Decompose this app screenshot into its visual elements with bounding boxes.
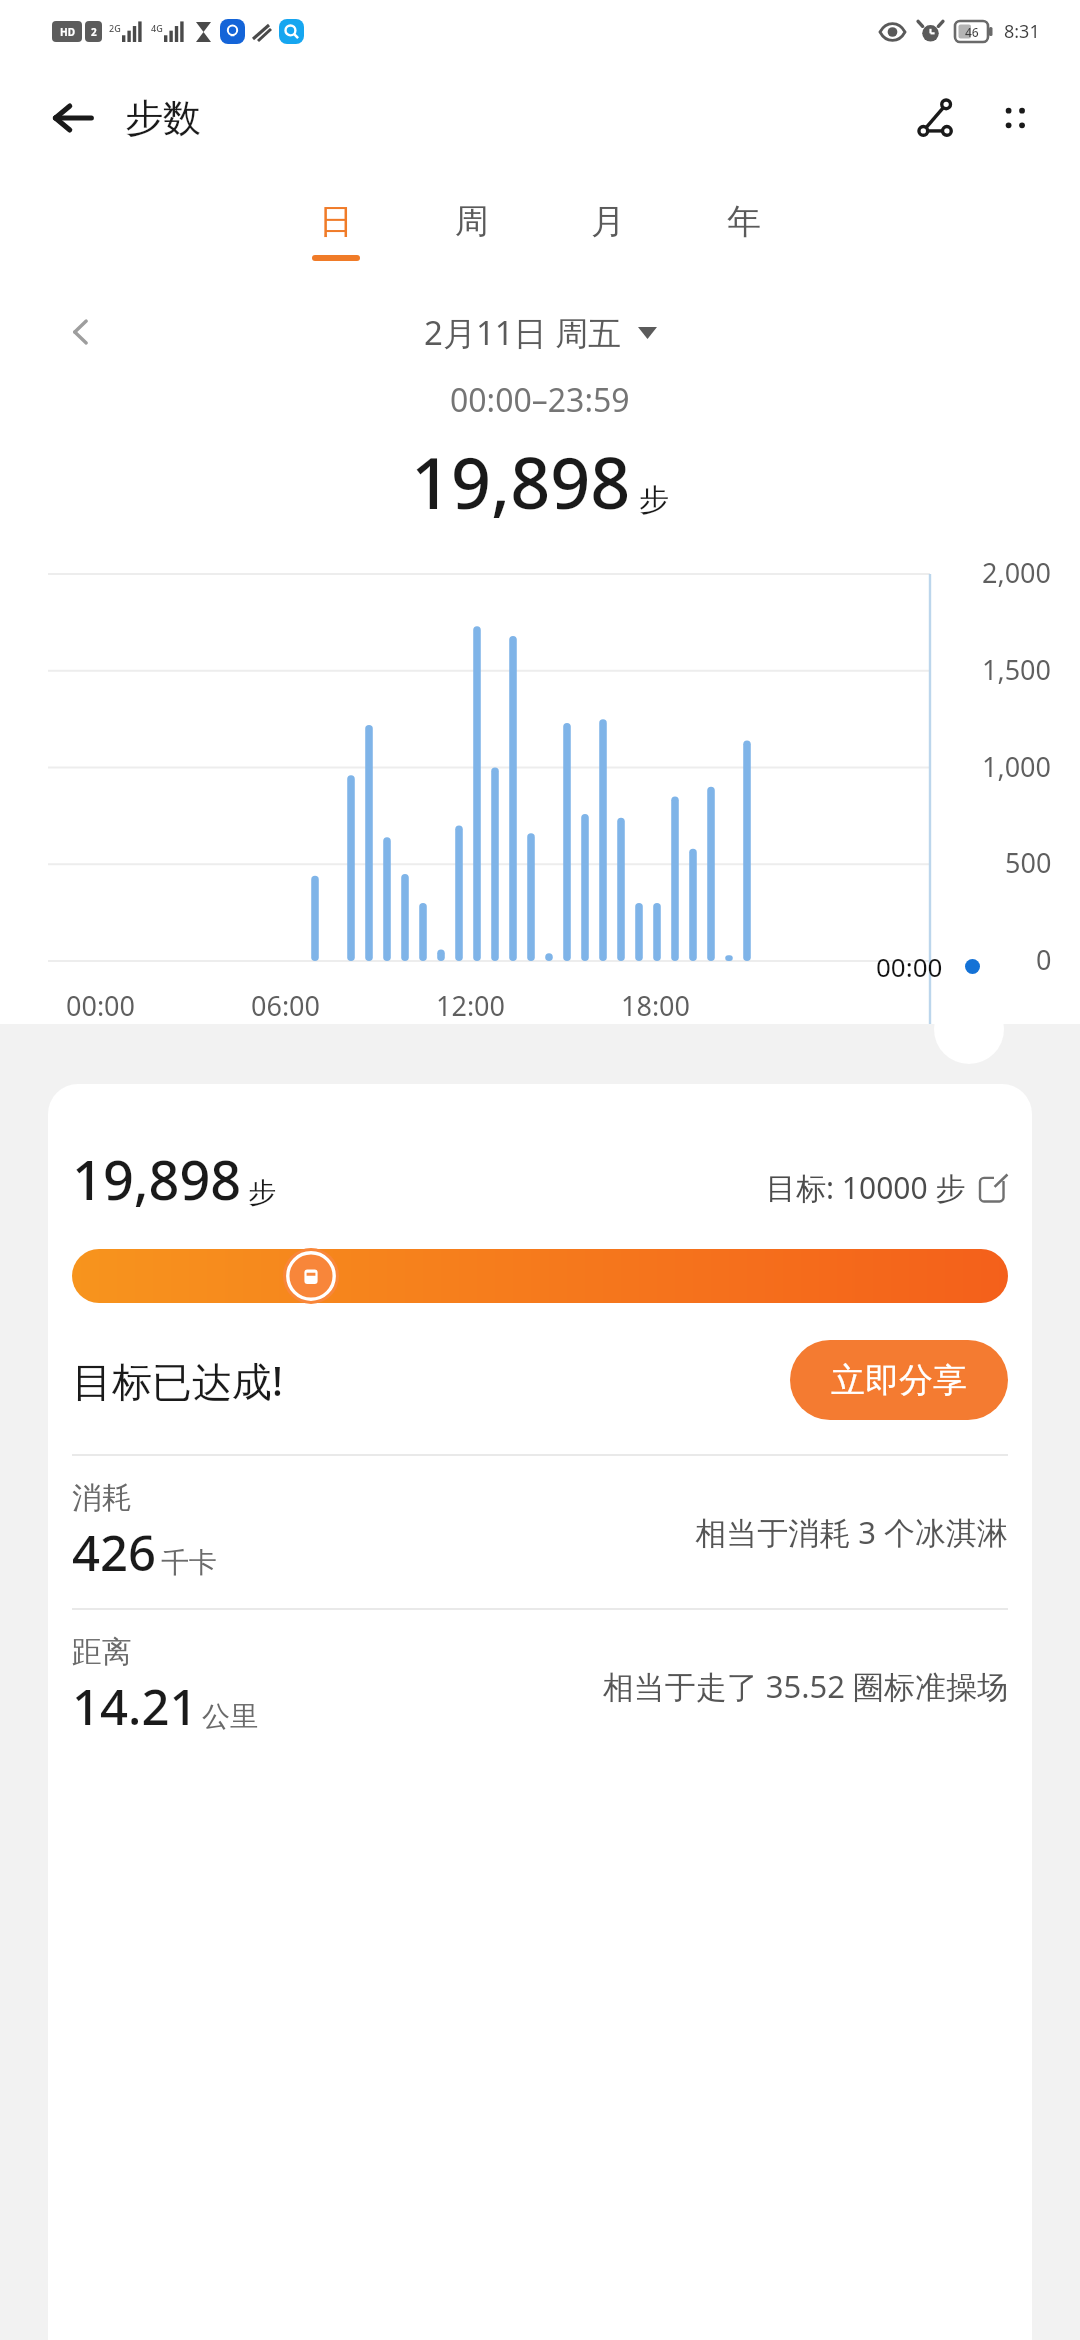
button[interactable]: Back <box>42 87 104 149</box>
staticText: 18:00 <box>621 987 691 1024</box>
staticText: 步 <box>639 481 669 519</box>
button[interactable]: 月 <box>540 174 676 286</box>
button[interactable]: Share <box>904 85 970 151</box>
staticText: 2,000 <box>982 554 1052 591</box>
staticText: 00:00 <box>876 949 943 984</box>
staticText: 步 <box>248 1175 276 1210</box>
staticText: 日 <box>319 200 353 243</box>
staticText: 相当于走了 35.52 圈标准操场 <box>602 1665 1008 1707</box>
staticText: 2 <box>91 25 97 39</box>
staticText: 500 <box>1005 844 1052 881</box>
button[interactable]: 2月11日 周五 <box>424 310 657 355</box>
staticText: 步数 <box>125 94 201 142</box>
staticText: 年 <box>727 200 761 243</box>
staticText: 2G <box>109 22 121 34</box>
staticText: 月 <box>591 200 625 243</box>
staticText: 1,500 <box>982 651 1052 688</box>
staticText: 千卡 <box>161 1545 217 1580</box>
button[interactable]: 日 <box>268 174 404 286</box>
staticText: 周 <box>455 200 489 243</box>
staticText: 立即分享 <box>831 1359 967 1402</box>
staticText: 19,898 <box>72 1142 242 1216</box>
staticText: 00:00–23:59 <box>450 378 630 422</box>
button[interactable]: 距离 <box>72 1610 1008 1762</box>
staticText: 公里 <box>202 1699 258 1734</box>
staticText: HD <box>60 25 75 39</box>
button[interactable]: 周 <box>404 174 540 286</box>
staticText: 1,000 <box>982 748 1052 785</box>
button[interactable]: Previous day <box>52 303 110 361</box>
staticText: 19,898 <box>411 434 631 529</box>
button[interactable]: 消耗 <box>72 1456 1008 1608</box>
staticText: 2月11日 周五 <box>424 310 622 355</box>
staticText: 距离 <box>72 1633 132 1671</box>
staticText: 目标: 10000 步 <box>766 1167 966 1208</box>
button[interactable]: 年 <box>676 174 812 286</box>
staticText: 14.21 <box>72 1673 198 1740</box>
button[interactable]: 立即分享 <box>790 1340 1008 1420</box>
staticText: 4G <box>151 22 163 34</box>
staticText: 426 <box>72 1519 157 1586</box>
staticText: 8:31 <box>1004 19 1040 44</box>
staticText: 06:00 <box>251 987 321 1024</box>
button[interactable]: More options <box>982 85 1048 151</box>
staticText: 00:00 <box>66 987 136 1024</box>
button[interactable]: 目标: 10000 步 <box>766 1167 1008 1208</box>
staticText: 消耗 <box>72 1479 132 1517</box>
staticText: 12:00 <box>436 987 506 1024</box>
staticText: 目标已达成! <box>72 1353 283 1408</box>
staticText: 0 <box>1036 941 1052 978</box>
staticText: 相当于消耗 3 个冰淇淋 <box>695 1511 1008 1553</box>
staticText: 46 <box>965 24 979 40</box>
button[interactable]: Expand details <box>934 994 1004 1064</box>
